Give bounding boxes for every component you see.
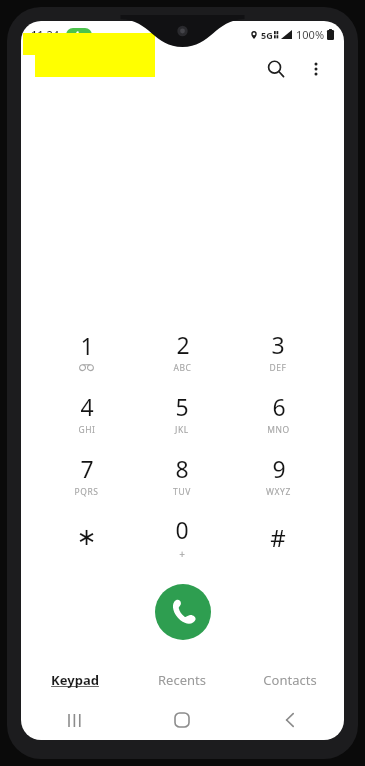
button[interactable]: # xyxy=(230,506,326,568)
button[interactable]: 2 xyxy=(134,320,230,382)
staticText: 100% xyxy=(296,27,325,42)
button[interactable]: Back xyxy=(236,700,344,740)
staticText: ABC xyxy=(173,362,192,374)
button[interactable]: ∗ xyxy=(39,506,134,568)
staticText: 8 xyxy=(175,453,189,484)
staticText: 5 xyxy=(175,391,189,422)
button[interactable]: 6 xyxy=(230,382,326,444)
button[interactable]: 3 xyxy=(230,320,326,382)
staticText: Contacts xyxy=(263,671,317,689)
staticText: 7 xyxy=(80,453,94,484)
button[interactable]: 1 xyxy=(39,320,134,382)
staticText: 1 xyxy=(80,330,94,361)
staticText: PQRS xyxy=(74,486,99,498)
button[interactable]: Recent apps xyxy=(21,700,128,740)
staticText: 4 xyxy=(80,391,94,422)
staticText: DEF xyxy=(269,362,287,374)
button[interactable]: Search xyxy=(256,49,296,89)
staticText: + xyxy=(179,547,186,561)
staticText: TUV xyxy=(173,486,191,498)
button[interactable]: 9 xyxy=(230,444,326,506)
button[interactable]: 4 xyxy=(39,382,134,444)
staticText: 9 xyxy=(272,453,286,484)
staticText: WXYZ xyxy=(266,486,291,498)
button[interactable]: Recents xyxy=(128,660,236,700)
staticText: JKL xyxy=(175,424,189,436)
staticText: ∗ xyxy=(76,523,97,551)
staticText: 6 xyxy=(272,391,286,422)
staticText: 2 xyxy=(176,329,190,360)
button[interactable]: Home xyxy=(128,700,236,740)
button[interactable]: Contacts xyxy=(236,660,344,700)
staticText: Recents xyxy=(158,671,206,689)
staticText: GHI xyxy=(78,424,96,436)
staticText: 3 xyxy=(271,329,285,360)
button[interactable]: More options xyxy=(296,49,336,89)
button[interactable]: Keypad xyxy=(21,660,128,700)
button[interactable]: 0 xyxy=(134,506,230,568)
staticText: MNO xyxy=(267,424,290,436)
button[interactable]: 8 xyxy=(134,444,230,506)
button[interactable]: Call xyxy=(155,584,211,640)
staticText: 5G xyxy=(261,29,273,41)
staticText: Keypad xyxy=(51,671,99,689)
button[interactable]: 7 xyxy=(39,444,134,506)
staticText: 0 xyxy=(175,514,189,545)
button[interactable]: 5 xyxy=(134,382,230,444)
staticText: 11:24 xyxy=(31,27,60,42)
staticText: # xyxy=(270,521,286,554)
